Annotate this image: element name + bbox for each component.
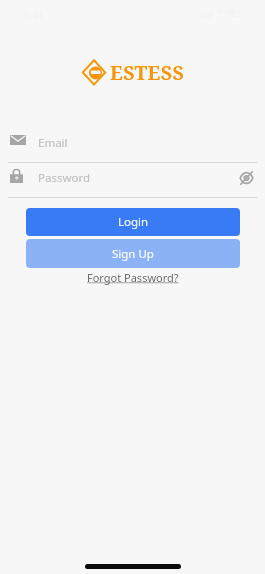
- staticText: Forgot Password?: [87, 270, 179, 285]
- staticText: Sign Up: [112, 246, 154, 262]
- staticText: ESTESS: [110, 59, 185, 86]
- staticText: Password: [38, 170, 91, 186]
- button[interactable]: Toggle password visibility: [0, 159, 265, 198]
- staticText: Email: [38, 135, 68, 151]
- button[interactable]: Email: [0, 124, 265, 163]
- button[interactable]: Login: [26, 208, 240, 236]
- other: Toggle password visibility: [239, 171, 254, 185]
- button[interactable]: Forgot Password?: [84, 268, 182, 287]
- button[interactable]: Sign Up: [26, 239, 240, 268]
- staticText: Login: [118, 214, 149, 230]
